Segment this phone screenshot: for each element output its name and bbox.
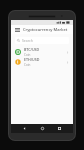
staticText: Cryptocurrency Market [23, 27, 68, 32]
button[interactable]: Open navigation menu [14, 26, 21, 33]
button[interactable]: Back [20, 124, 29, 133]
staticText: ETH/USD [24, 57, 40, 62]
button[interactable]: Search [15, 37, 69, 44]
button[interactable]: BTC/USD [11, 47, 73, 57]
button[interactable]: Recent apps [55, 124, 64, 133]
staticText: Coin [24, 63, 31, 67]
staticText: BTC/USD [24, 47, 40, 52]
staticText: Coin [24, 53, 31, 57]
staticText: Search [22, 38, 33, 43]
button[interactable]: ETH/USD [11, 57, 73, 67]
button[interactable]: Home [38, 124, 47, 133]
